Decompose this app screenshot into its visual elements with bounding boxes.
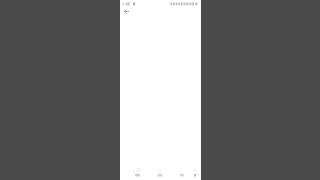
button[interactable]: Navigate up <box>120 8 131 17</box>
button[interactable]: Alerts <box>176 168 188 180</box>
button[interactable]: Profile <box>189 168 201 180</box>
button[interactable]: Library <box>131 168 144 180</box>
button[interactable]: Search <box>154 168 166 180</box>
